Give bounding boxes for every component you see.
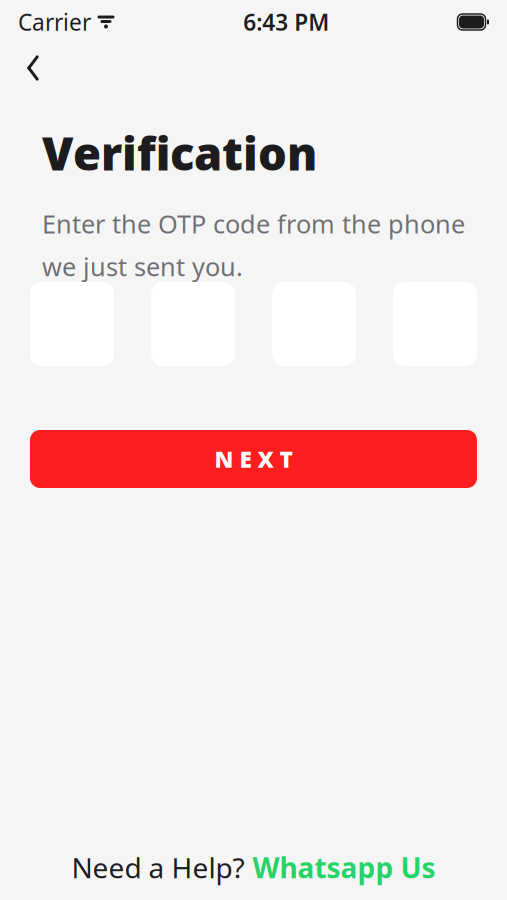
staticText: N E X T (214, 444, 292, 474)
staticText: Carrier (18, 7, 91, 37)
staticText: Enter the OTP code from the phone we jus… (42, 207, 465, 283)
staticText: 6:43 PM (243, 7, 329, 37)
button[interactable]: N E X T (30, 430, 477, 488)
staticText: Whatsapp Us (252, 849, 435, 886)
button[interactable]: Back (10, 45, 56, 91)
staticText: Need a Help? (71, 849, 244, 886)
button[interactable]: Whatsapp Us (252, 849, 435, 886)
staticText: Verification (42, 123, 317, 183)
